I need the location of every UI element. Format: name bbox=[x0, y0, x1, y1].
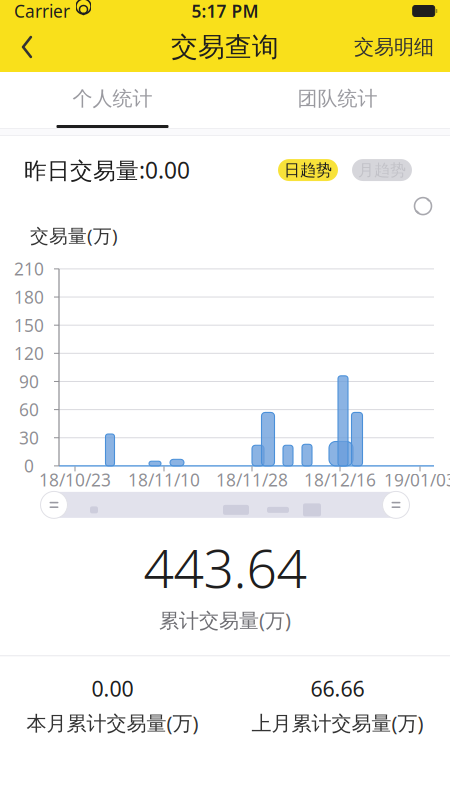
staticText: 18/12/16 bbox=[304, 468, 376, 491]
staticText: 昨日交易量:0.00 bbox=[24, 155, 190, 185]
button[interactable]: 团队统计 bbox=[225, 72, 450, 128]
staticText: 18/10/23 bbox=[39, 468, 111, 491]
staticText: 120 bbox=[14, 342, 44, 365]
staticText: 150 bbox=[14, 314, 44, 337]
staticText: 66.66 bbox=[310, 674, 364, 703]
button[interactable]: 月趋势 bbox=[352, 159, 412, 181]
staticText: 30 bbox=[19, 426, 39, 449]
button[interactable]: 日趋势 bbox=[278, 159, 338, 181]
staticText: 18/11/28 bbox=[216, 468, 288, 491]
staticText: 180 bbox=[14, 285, 44, 308]
staticText: 本月累计交易量(万) bbox=[26, 710, 198, 736]
staticText: 19/01/03 bbox=[384, 468, 450, 491]
staticText: 上月累计交易量(万) bbox=[251, 710, 423, 736]
staticText: 累计交易量(万) bbox=[159, 607, 291, 633]
button[interactable]: 结束范围 bbox=[381, 490, 411, 520]
staticText: 0 bbox=[24, 454, 34, 477]
staticText: 90 bbox=[19, 370, 39, 393]
button[interactable]: 交易明细 bbox=[342, 22, 450, 72]
staticText: 443.64 bbox=[143, 532, 306, 603]
staticText: 18/11/10 bbox=[128, 468, 200, 491]
button[interactable]: 起始范围 bbox=[39, 490, 69, 520]
staticText: 交易明细 bbox=[354, 35, 434, 59]
staticText: 5:17 PM bbox=[191, 0, 258, 22]
staticText: 交易量(万) bbox=[30, 223, 118, 248]
button[interactable]: 个人统计 bbox=[0, 72, 225, 128]
staticText: 210 bbox=[14, 257, 44, 280]
staticText: 团队统计 bbox=[297, 86, 377, 111]
staticText: 个人统计 bbox=[72, 86, 152, 111]
staticText: 日趋势 bbox=[284, 160, 332, 180]
staticText: 月趋势 bbox=[358, 160, 406, 180]
button[interactable]: 返回 bbox=[0, 22, 52, 72]
staticText: 0.00 bbox=[91, 674, 133, 703]
staticText: Carrier bbox=[14, 0, 70, 22]
staticText: 60 bbox=[19, 398, 39, 421]
button[interactable]: 刷新 bbox=[408, 191, 438, 221]
staticText: 交易查询 bbox=[171, 31, 279, 63]
